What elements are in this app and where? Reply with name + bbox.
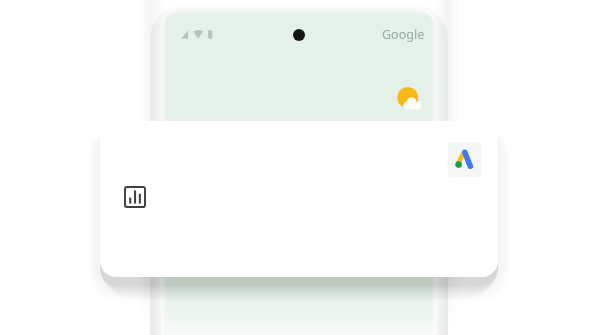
button[interactable]: Google Ads	[448, 142, 482, 177]
button[interactable]: Analytics	[124, 186, 146, 208]
staticText: Google	[382, 26, 425, 43]
button[interactable]: Analytics	[100, 121, 498, 277]
